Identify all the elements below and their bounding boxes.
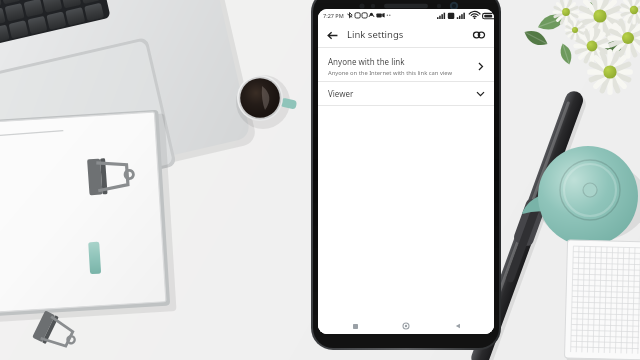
staticText: 7:27 PM (323, 12, 344, 19)
staticText: Anyone on the Internet with this link ca… (328, 69, 453, 77)
button[interactable]: Back (323, 26, 341, 44)
staticText: Viewer (328, 88, 354, 99)
staticText: Link settings (347, 28, 404, 41)
button[interactable]: Back (443, 318, 473, 334)
button[interactable]: Copy link (470, 26, 488, 44)
staticText: Anyone with the link (328, 56, 405, 67)
button[interactable]: Viewer (318, 82, 494, 105)
button[interactable]: Home (391, 318, 421, 334)
button[interactable]: Anyone with the link (318, 51, 494, 81)
button[interactable]: Recent apps (340, 318, 370, 334)
